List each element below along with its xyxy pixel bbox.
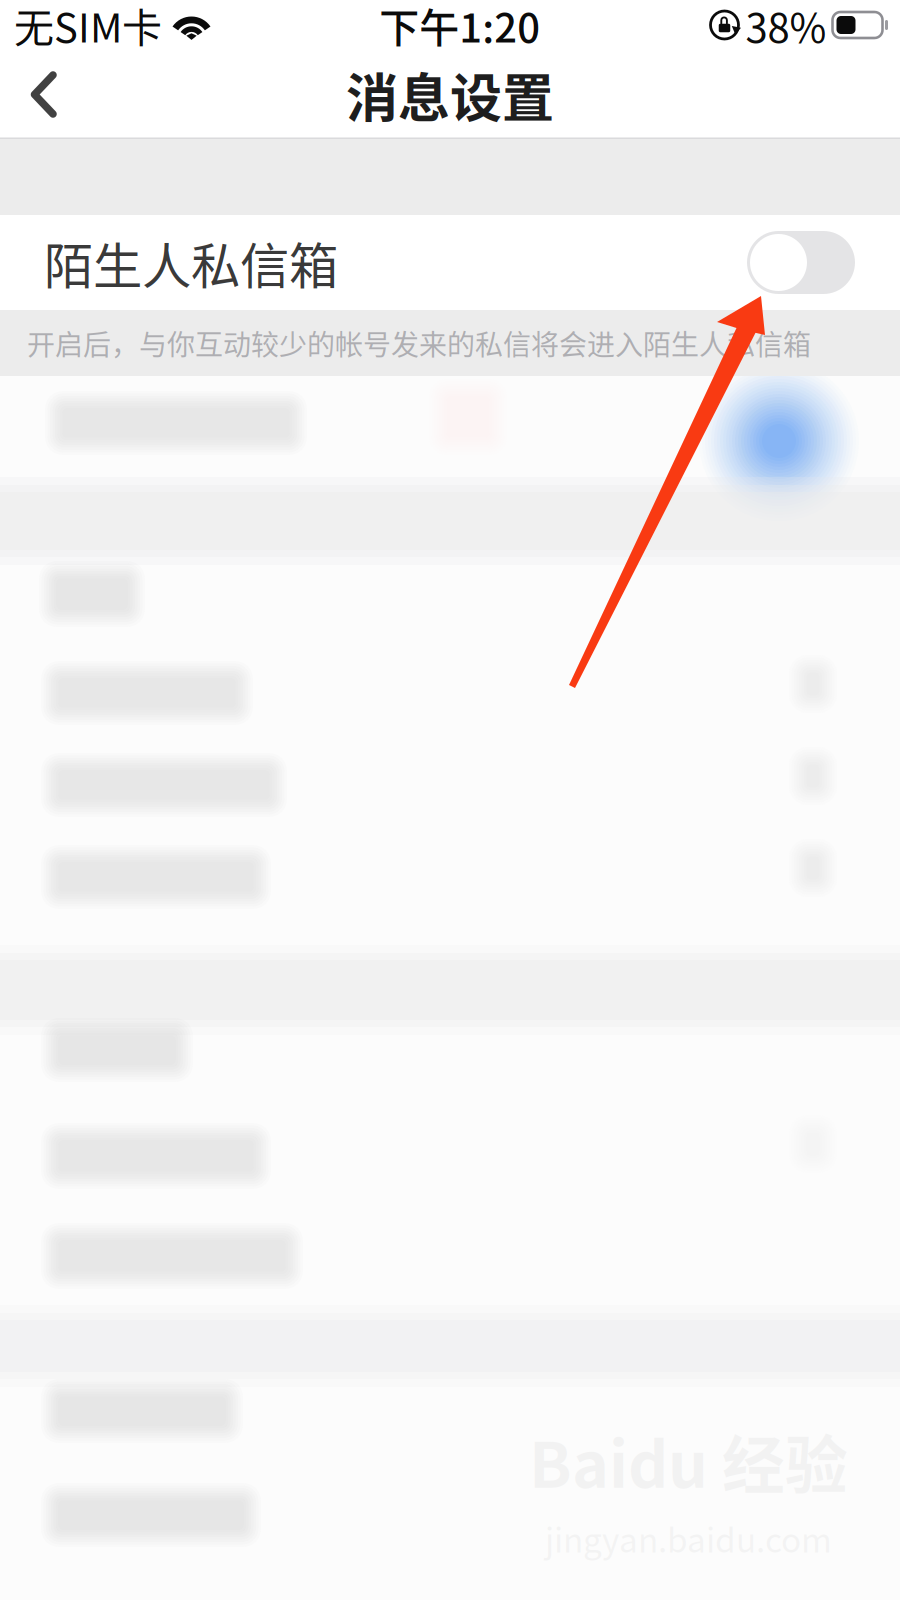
- staticText: Baidu 经验: [529, 1415, 848, 1506]
- button[interactable]: 陌生人私信箱: [0, 215, 900, 310]
- button[interactable]: 返回: [0, 50, 88, 139]
- staticText: 下午1:20: [379, 0, 540, 54]
- staticText: 消息设置: [346, 57, 554, 132]
- staticText: 陌生人私信箱: [44, 227, 338, 298]
- staticText: 38%: [745, 0, 826, 54]
- staticText: 开启后，与你互动较少的帐号发来的私信将会进入陌生人私信箱: [27, 323, 811, 363]
- staticText: 无SIM卡: [14, 0, 162, 54]
